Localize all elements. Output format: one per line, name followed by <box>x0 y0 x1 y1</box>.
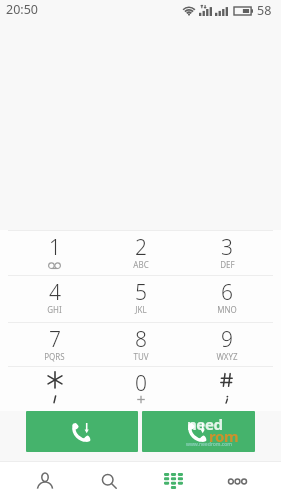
button[interactable]: 7 <box>11 322 98 366</box>
staticText: 9 <box>221 325 233 354</box>
staticText: 6 <box>221 278 233 307</box>
staticText: TUV <box>133 351 149 362</box>
button[interactable]: 6 <box>184 275 270 322</box>
button[interactable]: Search <box>77 462 141 500</box>
staticText: need <box>187 414 223 434</box>
staticText: 8 <box>135 325 147 354</box>
button[interactable] <box>11 366 98 411</box>
button[interactable]: 1 <box>11 230 98 275</box>
staticText: 4 <box>49 278 61 307</box>
staticText: WXYZ <box>216 351 238 362</box>
button[interactable]: 3 <box>184 230 270 275</box>
staticText: 3 <box>221 233 233 262</box>
button[interactable]: Dialpad <box>141 462 205 500</box>
button[interactable]: 2 <box>98 230 184 275</box>
button[interactable]: 9 <box>184 322 270 366</box>
button[interactable]: More options <box>205 462 269 500</box>
button[interactable]: Contacts <box>12 462 77 500</box>
button[interactable]: Video call <box>142 411 255 452</box>
staticText: 1 <box>49 233 61 262</box>
staticText: GHI <box>47 304 62 315</box>
staticText: 5 <box>135 278 147 307</box>
button[interactable]: 5 <box>98 275 184 322</box>
staticText: 0 <box>135 369 147 398</box>
staticText: www.needrom.com <box>186 441 232 448</box>
staticText: JKL <box>135 304 147 315</box>
button[interactable] <box>184 366 270 411</box>
staticText: DEF <box>220 259 235 270</box>
staticText: 7 <box>49 325 61 354</box>
button[interactable]: 0 <box>98 366 184 411</box>
staticText: rom <box>209 426 239 446</box>
staticText: 20:50 <box>6 1 38 18</box>
staticText: 2 <box>135 233 147 262</box>
staticText: PQRS <box>44 351 65 362</box>
staticText: MNO <box>217 304 237 315</box>
staticText: ABC <box>133 259 149 270</box>
button[interactable]: 8 <box>98 322 184 366</box>
button[interactable]: Call <box>26 411 138 452</box>
staticText: 58 <box>257 2 272 18</box>
button[interactable]: 4 <box>11 275 98 322</box>
